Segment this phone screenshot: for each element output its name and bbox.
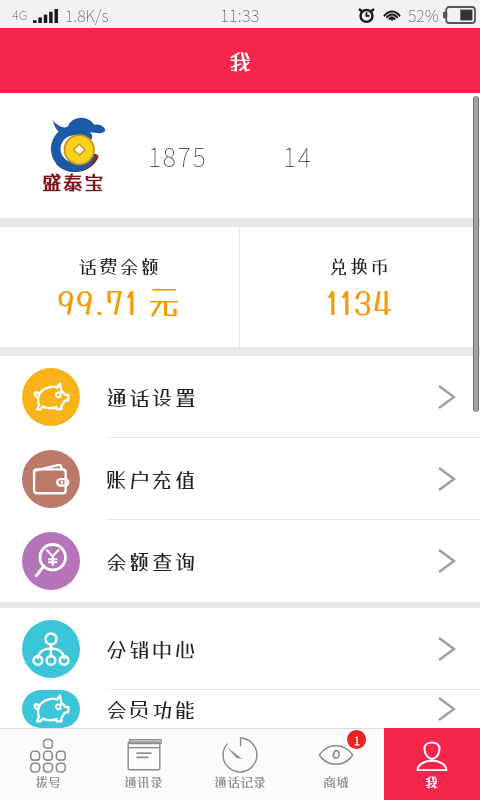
staticText: 我 — [229, 48, 252, 74]
staticText: 我 — [425, 774, 439, 789]
button[interactable]: 兑换币 — [240, 227, 480, 347]
button[interactable]: 余额查询 — [0, 520, 480, 602]
button[interactable]: Call log — [192, 728, 288, 800]
button[interactable]: 分销中心 — [0, 608, 480, 690]
staticText: 1134 — [326, 284, 394, 322]
staticText: 通话记录 — [214, 774, 267, 789]
staticText: 盛泰宝 — [42, 170, 105, 194]
staticText: 兑换币 — [329, 255, 392, 277]
staticText: 4G — [12, 5, 28, 24]
staticText: 商城 — [323, 774, 350, 789]
staticText: 通讯录 — [124, 774, 164, 789]
staticText: 99.71 元 — [57, 284, 182, 322]
button[interactable]: Dialer — [0, 728, 96, 800]
staticText: 分销中心 — [106, 637, 198, 662]
staticText: 话费余额 — [78, 255, 162, 277]
staticText: 1 — [354, 732, 360, 748]
button[interactable]: 话费余额 — [0, 227, 239, 347]
button[interactable]: 通话设置 — [0, 356, 480, 438]
button[interactable]: 盛泰宝 — [0, 93, 480, 218]
staticText: 余额查询 — [106, 549, 198, 574]
staticText: 拨号 — [35, 774, 62, 789]
button[interactable]: Store — [288, 728, 384, 800]
button[interactable]: 账户充值 — [0, 438, 480, 520]
staticText: 账户充值 — [106, 467, 198, 492]
staticText: 会员功能 — [106, 697, 198, 722]
staticText: 1875 — [148, 138, 208, 174]
button[interactable]: Me — [384, 728, 480, 800]
staticText: 11:33 — [220, 2, 260, 27]
button[interactable]: 会员功能 — [0, 690, 480, 728]
button[interactable]: Contacts — [96, 728, 192, 800]
staticText: 14 — [283, 138, 313, 174]
staticText: 1.8K/s — [65, 3, 109, 26]
staticText: 52% — [408, 3, 439, 26]
staticText: 通话设置 — [106, 385, 198, 410]
